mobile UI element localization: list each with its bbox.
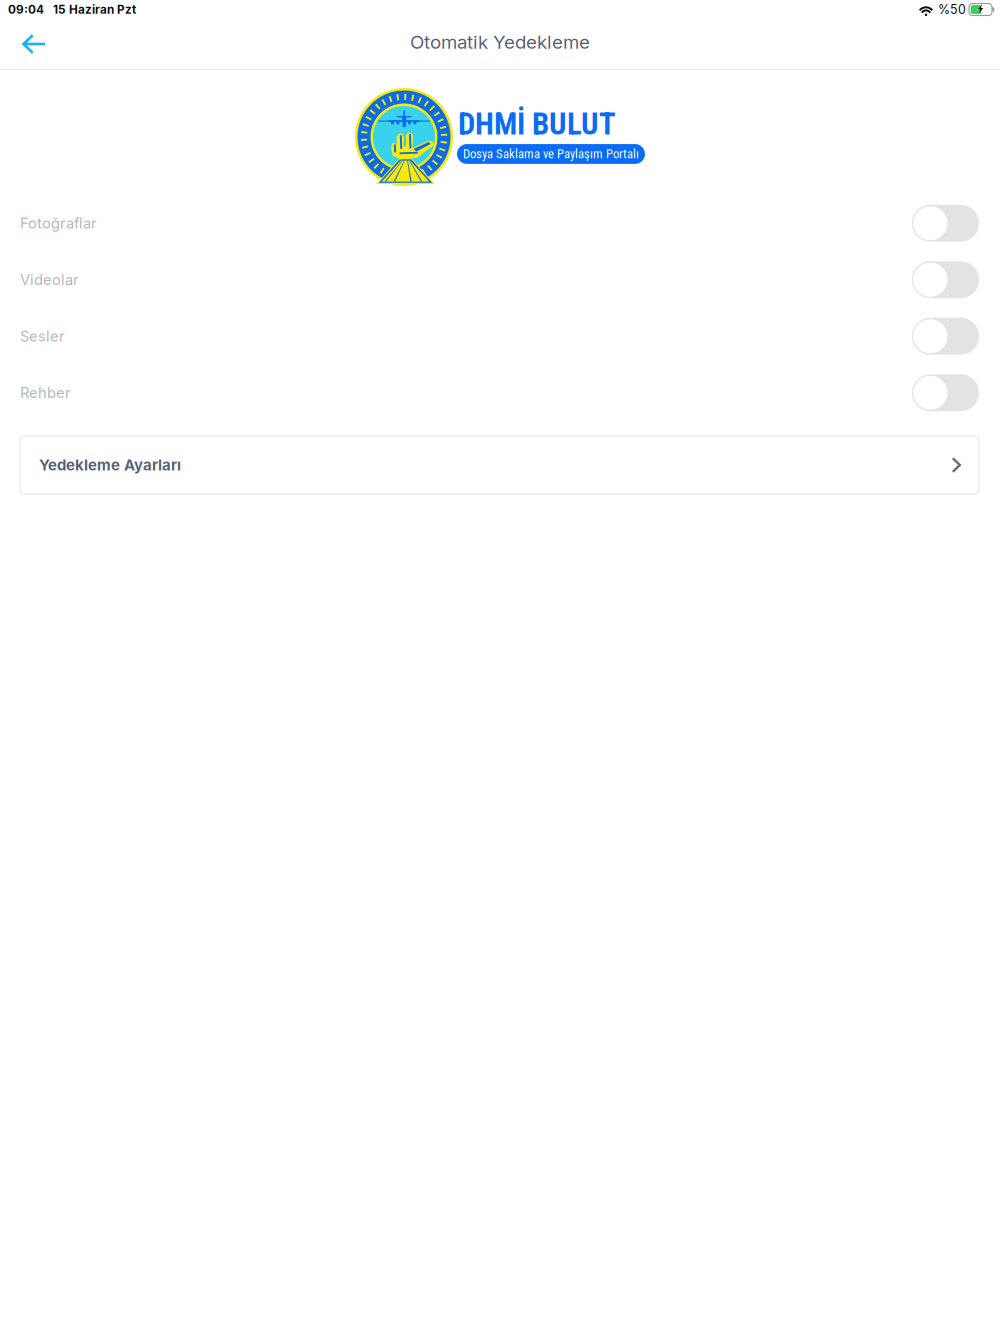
staticText: Yedekleme Ayarları <box>39 456 181 474</box>
button[interactable]: Videolar <box>0 251 1000 308</box>
staticText: Sesler <box>20 327 65 345</box>
staticText: 15 Haziran Pzt <box>53 2 136 17</box>
staticText: Otomatik Yedekleme <box>410 31 590 53</box>
staticText: Rehber <box>20 384 71 402</box>
button[interactable]: Sesler <box>0 308 1000 364</box>
staticText: Dosya Saklama ve Paylaşım Portalı <box>463 146 639 161</box>
button[interactable]: Geri <box>11 21 57 67</box>
staticText: 09:04 <box>8 2 44 17</box>
staticText: Videolar <box>20 271 79 289</box>
staticText: Fotoğraflar <box>20 214 97 232</box>
staticText: %50 <box>938 2 966 17</box>
button[interactable]: Fotoğraflar <box>0 195 1000 251</box>
staticText: DHMİ BULUT <box>458 106 616 142</box>
button[interactable]: Yedekleme Ayarları <box>20 436 979 494</box>
button[interactable]: Rehber <box>0 364 1000 421</box>
